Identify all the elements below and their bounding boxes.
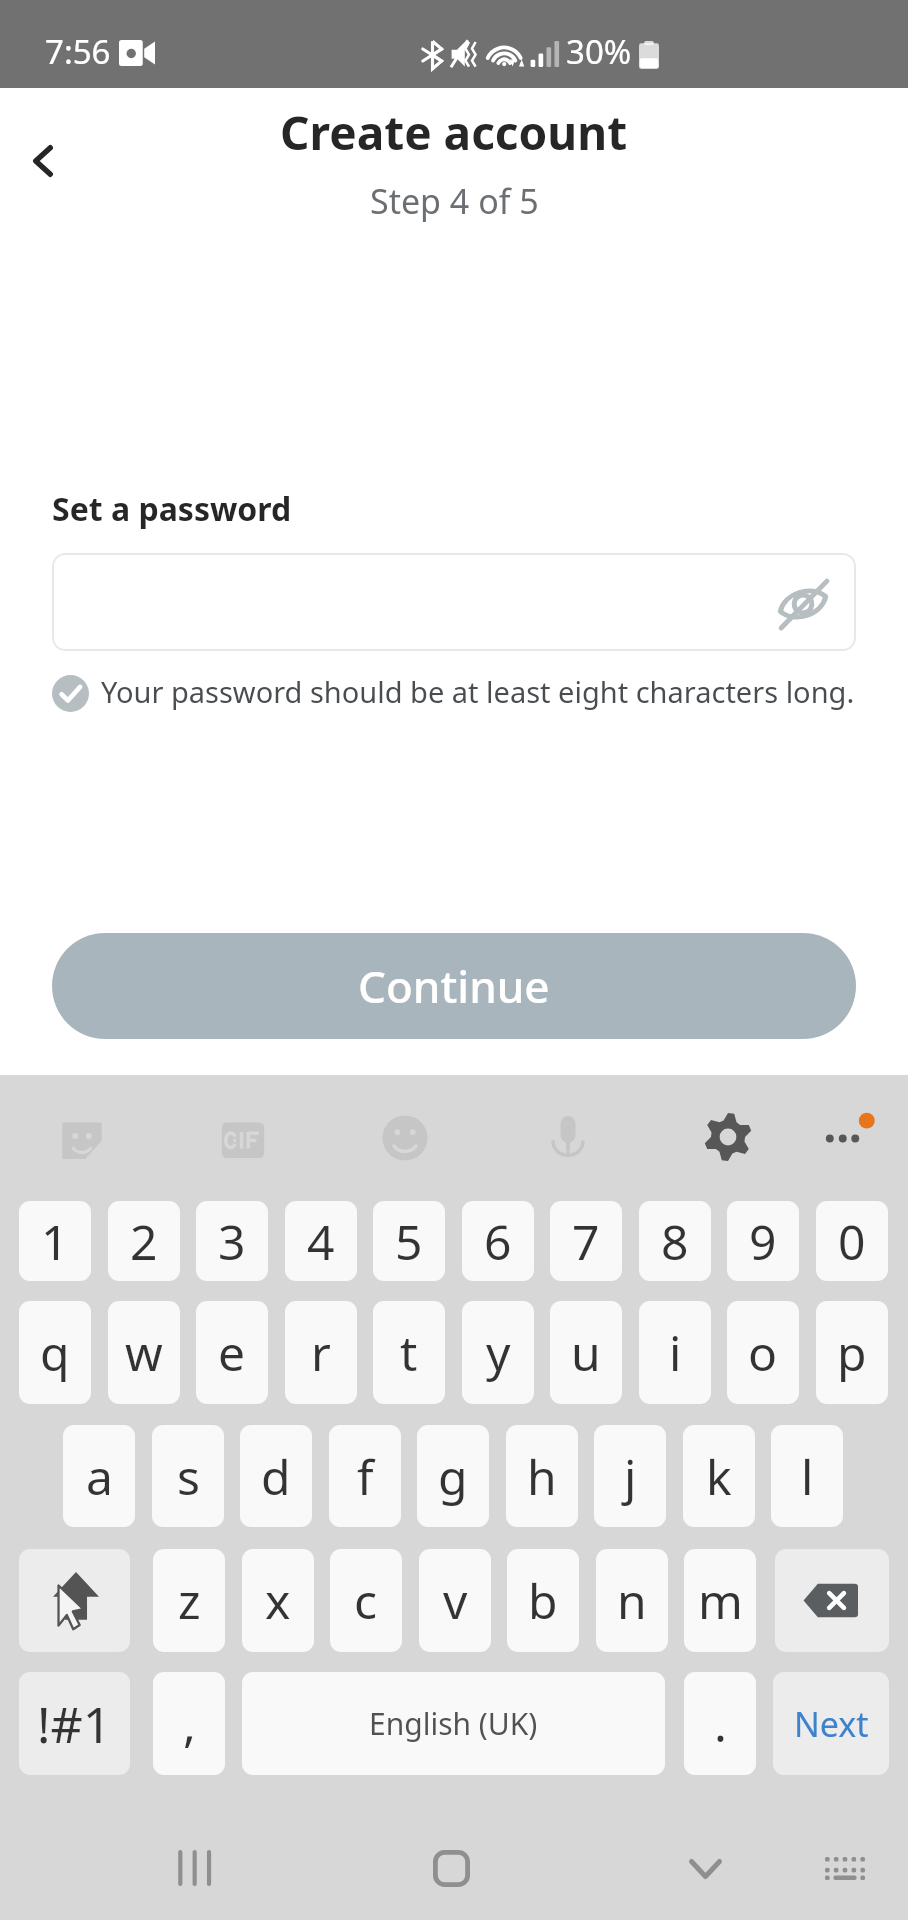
button[interactable]: 0 (816, 1201, 888, 1281)
staticText: 30% (566, 29, 632, 74)
staticText: u (571, 1320, 601, 1385)
button[interactable]: Voice input (530, 1099, 606, 1175)
button[interactable]: GIF (205, 1099, 281, 1175)
staticText: b (528, 1568, 558, 1633)
button[interactable]: , (153, 1672, 225, 1775)
staticText: 3 (218, 1209, 246, 1274)
button[interactable]: f (329, 1425, 401, 1527)
staticText: q (40, 1320, 70, 1385)
staticText: f (357, 1444, 374, 1509)
button[interactable]: d (240, 1425, 312, 1527)
staticText: Next (794, 1701, 869, 1747)
button[interactable]: Emoji (367, 1099, 443, 1175)
staticText: Create account (280, 101, 628, 164)
button[interactable]: More options (811, 1099, 887, 1175)
button[interactable]: u (550, 1301, 622, 1404)
button[interactable]: p (816, 1301, 888, 1404)
button[interactable]: 8 (639, 1201, 711, 1281)
button[interactable]: n (596, 1549, 668, 1652)
button[interactable]: 1 (19, 1201, 91, 1281)
staticText: e (218, 1320, 246, 1385)
button[interactable]: v (419, 1549, 491, 1652)
button[interactable]: English (UK) (242, 1672, 665, 1775)
staticText: t (400, 1320, 418, 1385)
button[interactable]: 2 (108, 1201, 180, 1281)
button[interactable]: j (594, 1425, 666, 1527)
staticText: 5 (395, 1209, 423, 1274)
staticText: p (837, 1320, 867, 1385)
button[interactable]: z (153, 1549, 225, 1652)
button[interactable]: Shift (19, 1549, 130, 1652)
button[interactable]: c (330, 1549, 402, 1652)
button[interactable]: Switch keyboard (807, 1830, 883, 1906)
button[interactable]: 5 (373, 1201, 445, 1281)
button[interactable]: Stickers (44, 1099, 120, 1175)
staticText: 9 (749, 1209, 777, 1274)
button[interactable]: b (507, 1549, 579, 1652)
staticText: s (177, 1444, 200, 1509)
button[interactable]: y (462, 1301, 534, 1404)
button[interactable]: r (285, 1301, 357, 1404)
staticText: d (261, 1444, 291, 1509)
staticText: 8 (661, 1209, 689, 1274)
button[interactable]: i (639, 1301, 711, 1404)
staticText: y (486, 1320, 511, 1385)
button[interactable]: e (196, 1301, 268, 1404)
button[interactable]: k (683, 1425, 755, 1527)
staticText: , (183, 1691, 196, 1756)
staticText: 4 (307, 1209, 335, 1274)
staticText: k (706, 1444, 732, 1509)
button[interactable]: o (727, 1301, 799, 1404)
staticText: . (714, 1691, 727, 1756)
button[interactable]: a (63, 1425, 135, 1527)
staticText: !#1 (37, 1690, 112, 1758)
staticText: j (624, 1444, 637, 1509)
button[interactable]: h (506, 1425, 578, 1527)
button[interactable]: x (242, 1549, 314, 1652)
button[interactable]: q (19, 1301, 91, 1404)
staticText: c (354, 1568, 378, 1633)
button[interactable]: 9 (727, 1201, 799, 1281)
button[interactable]: w (108, 1301, 180, 1404)
button[interactable]: Recent apps (156, 1830, 232, 1906)
staticText: n (617, 1568, 647, 1633)
staticText: z (178, 1568, 201, 1633)
button[interactable]: Home (413, 1830, 489, 1906)
button[interactable]: 4 (285, 1201, 357, 1281)
staticText: i (669, 1320, 682, 1385)
button[interactable]: !#1 (19, 1672, 130, 1775)
staticText: 1 (41, 1209, 69, 1274)
staticText: 7:56 (45, 29, 111, 74)
button[interactable]: Next (773, 1672, 889, 1775)
button[interactable]: g (417, 1425, 489, 1527)
button[interactable]: Show password (772, 571, 834, 633)
staticText: l (801, 1444, 814, 1509)
button[interactable]: . (684, 1672, 756, 1775)
staticText: o (748, 1320, 778, 1385)
staticText: r (311, 1320, 331, 1385)
button[interactable]: Backspace (775, 1549, 889, 1652)
staticText: x (265, 1568, 291, 1633)
button[interactable]: m (684, 1549, 756, 1652)
button[interactable]: Back (7, 124, 79, 196)
button[interactable]: Hide keyboard (667, 1830, 743, 1906)
staticText: a (86, 1444, 113, 1509)
button[interactable]: s (152, 1425, 224, 1527)
staticText: Set a password (52, 487, 292, 531)
staticText: m (698, 1568, 743, 1633)
staticText: Continue (358, 956, 550, 1016)
button[interactable]: Password field (52, 553, 856, 651)
button[interactable]: l (771, 1425, 843, 1527)
button[interactable]: Keyboard settings (690, 1099, 766, 1175)
button[interactable]: t (373, 1301, 445, 1404)
staticText: Your password should be at least eight c… (101, 672, 855, 711)
staticText: h (527, 1444, 557, 1509)
staticText: 2 (130, 1209, 158, 1274)
staticText: 7 (572, 1209, 600, 1274)
button[interactable]: 6 (462, 1201, 534, 1281)
staticText: g (438, 1444, 468, 1509)
button[interactable]: Continue (52, 933, 856, 1039)
staticText: w (125, 1320, 163, 1385)
button[interactable]: 3 (196, 1201, 268, 1281)
button[interactable]: 7 (550, 1201, 622, 1281)
